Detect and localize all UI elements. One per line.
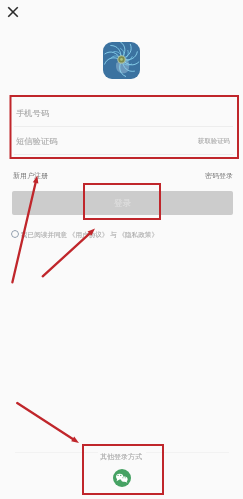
button[interactable]: 密码登录	[205, 168, 233, 183]
staticText: 新用户注册	[13, 171, 48, 180]
button[interactable]: WeChat login	[113, 469, 131, 487]
button[interactable]: Close	[5, 4, 21, 20]
button[interactable]: 新用户注册	[13, 168, 48, 183]
staticText: 登录	[114, 198, 131, 209]
button[interactable]: 我已阅读并同意 《用户协议》 与 《隐私政策》	[21, 230, 159, 239]
staticText: 短信验证码	[16, 136, 58, 146]
staticText: 手机号码	[16, 108, 50, 118]
button[interactable]: App logo	[103, 42, 140, 79]
button[interactable]: 手机号码	[16, 99, 233, 126]
button[interactable]: 获取验证码	[160, 127, 230, 154]
button[interactable]: 登录	[12, 191, 233, 215]
button[interactable]: 短信验证码	[16, 127, 156, 154]
staticText: 我已阅读并同意 《用户协议》 与 《隐私政策》	[21, 230, 159, 239]
button[interactable]: Agree to terms	[11, 230, 19, 238]
staticText: 密码登录	[205, 171, 233, 180]
staticText: 获取验证码	[198, 137, 230, 145]
staticText: 其他登录方式	[100, 452, 142, 461]
